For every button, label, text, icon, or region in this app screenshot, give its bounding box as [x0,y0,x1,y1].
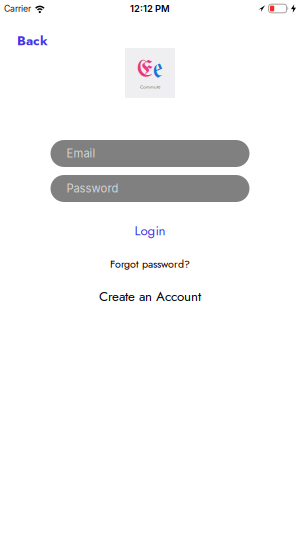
button[interactable]: Create an Account [99,287,201,306]
button[interactable]: Back [17,31,48,50]
staticText: Forgot password? [110,256,190,272]
button[interactable]: Forgot password? [110,256,190,272]
staticText: E [137,59,153,82]
staticText: 12:12 PM [130,3,170,14]
staticText: Create an Account [99,287,201,306]
staticText: Email [66,147,95,160]
staticText: Carrier [4,3,31,14]
button[interactable]: Login [134,221,165,240]
staticText: Password [66,182,118,195]
staticText: Login [134,221,165,240]
staticText: Commute [140,83,160,90]
staticText: e [153,56,163,83]
staticText: Back [17,31,48,50]
